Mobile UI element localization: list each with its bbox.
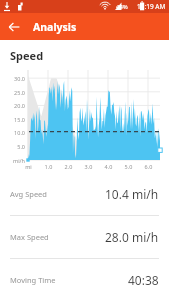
staticText: 2.0	[64, 163, 73, 170]
staticText: 40:38	[128, 272, 159, 288]
staticText: 5.0	[124, 163, 133, 170]
staticText: Speed	[10, 48, 44, 63]
staticText: 4.0	[104, 163, 113, 170]
staticText: 10.4 mi/h	[105, 186, 159, 202]
staticText: 3.0	[84, 163, 93, 170]
staticText: 28.0 mi/h	[105, 229, 159, 245]
staticText: 10.0	[0, 129, 25, 136]
button[interactable]: Moving Time	[0, 259, 169, 300]
staticText: 6.0	[144, 163, 153, 170]
staticText: 1.0	[44, 163, 53, 170]
staticText: 25.0	[0, 89, 25, 96]
staticText: Analysis	[33, 20, 77, 34]
button[interactable]: Max Speed	[0, 216, 169, 258]
staticText: 20.0	[0, 102, 25, 109]
button[interactable]: Avg Speed	[0, 173, 169, 215]
staticText: 15.0	[0, 116, 25, 123]
staticText: mi	[24, 163, 33, 170]
staticText: 5.0	[0, 143, 25, 150]
staticText: 44%	[116, 3, 128, 11]
staticText: mi/h	[0, 157, 25, 164]
staticText: Avg Speed	[10, 189, 47, 199]
staticText: Moving Time	[10, 275, 56, 285]
staticText: Max Speed	[10, 232, 49, 242]
staticText: 11:19 AM	[137, 2, 166, 11]
button[interactable]: Back	[0, 13, 27, 40]
staticText: 30.0	[0, 75, 25, 82]
